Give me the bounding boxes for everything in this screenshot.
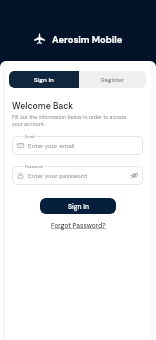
staticText: Welcome Back [12,100,74,111]
button[interactable] [12,166,143,185]
staticText: Sign In [34,76,54,84]
staticText: Register [101,76,125,84]
other: Aerosim [34,33,45,44]
staticText: Enter your email [28,142,75,150]
staticText: Fill out the information below in order … [12,114,127,127]
staticText: Enter your password [28,172,87,180]
button[interactable]: Register [79,71,146,88]
staticText: Email [25,134,35,139]
staticText: Aerosim Mobile [52,34,123,46]
staticText: Sign In [68,202,89,211]
staticText: Password [25,164,43,169]
staticText: Forgot Password? [51,221,106,230]
button[interactable]: Sign In [9,71,79,88]
button[interactable]: Forgot Password? [49,221,108,230]
button[interactable]: Show password [131,172,138,179]
button[interactable] [12,136,143,155]
button[interactable]: Sign In [40,198,116,214]
